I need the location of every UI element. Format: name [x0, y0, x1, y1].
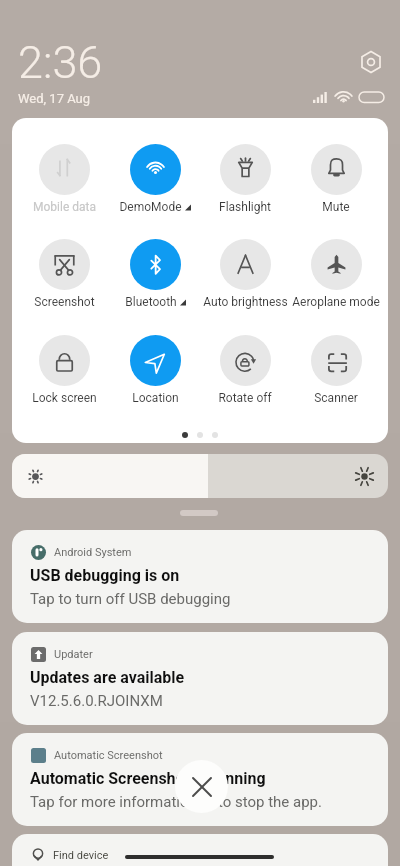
staticText: Automatic Screenshot is running — [30, 769, 266, 788]
staticText: Rotate off — [218, 391, 272, 405]
staticText: Android System — [54, 546, 132, 559]
staticText: Mobile data — [33, 200, 96, 214]
staticText: Location — [132, 391, 179, 405]
button[interactable]: Auto brightness — [199, 239, 291, 311]
staticText: Find device — [53, 849, 109, 862]
button[interactable]: Screenshot — [18, 239, 110, 311]
button[interactable]: Bluetooth — [109, 239, 201, 311]
button[interactable]: Scanner — [290, 335, 382, 407]
staticText: Screenshot — [34, 295, 95, 309]
button[interactable]: Rotate off — [199, 335, 291, 407]
button[interactable]: DemoMode — [109, 144, 201, 216]
button[interactable]: Aeroplane mode — [290, 239, 382, 311]
button[interactable]: Updater — [12, 632, 388, 725]
button[interactable]: Flashlight — [199, 144, 291, 216]
staticText: Updater — [54, 648, 93, 661]
staticText: Lock screen — [32, 391, 97, 405]
staticText: Wed, 17 Aug — [18, 91, 91, 106]
staticText: Flashlight — [219, 200, 271, 214]
staticText: Tap for more information or to stop the … — [30, 793, 322, 811]
staticText: Bluetooth — [125, 295, 177, 309]
staticText: Scanner — [314, 391, 358, 405]
staticText: Automatic Screenshot — [54, 749, 163, 762]
button[interactable]: Lock screen — [18, 335, 110, 407]
staticText: Mute — [322, 200, 350, 214]
staticText: V12.5.6.0.RJOINXM — [30, 692, 163, 710]
button[interactable]: Location — [109, 335, 201, 407]
staticText: USB debugging is on — [30, 566, 180, 585]
button[interactable]: Mobile data — [18, 144, 110, 216]
button[interactable]: Settings — [358, 49, 384, 75]
staticText: 2:36 — [18, 36, 103, 89]
button[interactable]: Automatic Screenshot — [12, 733, 388, 826]
staticText: DemoMode — [119, 200, 182, 214]
staticText: Auto brightness — [203, 295, 288, 309]
staticText: Updates are available — [30, 668, 185, 687]
staticText: Aeroplane mode — [292, 295, 380, 309]
staticText: Tap to turn off USB debugging — [30, 590, 231, 608]
button[interactable]: Android System — [12, 530, 388, 623]
button[interactable]: Find device — [12, 834, 388, 866]
button[interactable]: Brightness — [12, 454, 388, 498]
button[interactable]: Mute — [290, 144, 382, 216]
button[interactable]: Close — [175, 760, 228, 813]
